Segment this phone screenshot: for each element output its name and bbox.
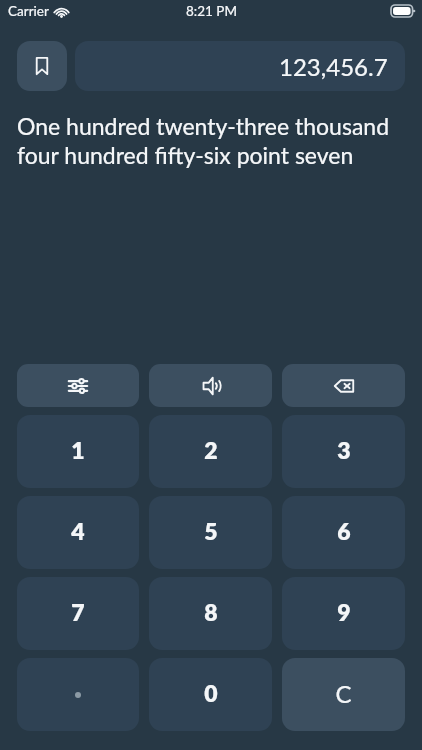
button[interactable]: 0 bbox=[149, 658, 272, 731]
button[interactable]: 9 bbox=[282, 577, 405, 650]
staticText: 5 bbox=[204, 517, 218, 545]
staticText: 8:21 PM bbox=[186, 3, 237, 19]
staticText: 4 bbox=[71, 517, 85, 545]
staticText: 2 bbox=[204, 436, 218, 464]
staticText: 3 bbox=[337, 436, 351, 464]
staticText: 123,456.7 bbox=[279, 52, 388, 81]
staticText: 1 bbox=[71, 436, 85, 464]
staticText: C bbox=[335, 679, 352, 708]
staticText: 8 bbox=[204, 598, 218, 626]
button[interactable]: 2 bbox=[149, 415, 272, 488]
staticText: 7 bbox=[71, 598, 85, 626]
button[interactable]: 6 bbox=[282, 496, 405, 569]
button[interactable]: 1 bbox=[17, 415, 139, 488]
button[interactable]: Speak bbox=[149, 364, 272, 407]
button[interactable]: Bookmark bbox=[17, 41, 67, 91]
button[interactable]: 8 bbox=[149, 577, 272, 650]
staticText: 6 bbox=[337, 517, 351, 545]
button[interactable]: 5 bbox=[149, 496, 272, 569]
staticText: 0 bbox=[204, 679, 218, 707]
staticText: Carrier bbox=[8, 3, 49, 19]
button[interactable]: Backspace bbox=[282, 364, 405, 407]
button[interactable]: 4 bbox=[17, 496, 139, 569]
staticText: One hundred twenty-three thousand four h… bbox=[17, 112, 405, 169]
button[interactable] bbox=[17, 658, 139, 731]
button[interactable]: 123,456.7 bbox=[75, 41, 405, 91]
button[interactable]: 7 bbox=[17, 577, 139, 650]
button[interactable]: 3 bbox=[282, 415, 405, 488]
button[interactable]: Settings bbox=[17, 364, 139, 407]
button[interactable]: C bbox=[282, 658, 405, 731]
staticText: 9 bbox=[337, 598, 351, 626]
